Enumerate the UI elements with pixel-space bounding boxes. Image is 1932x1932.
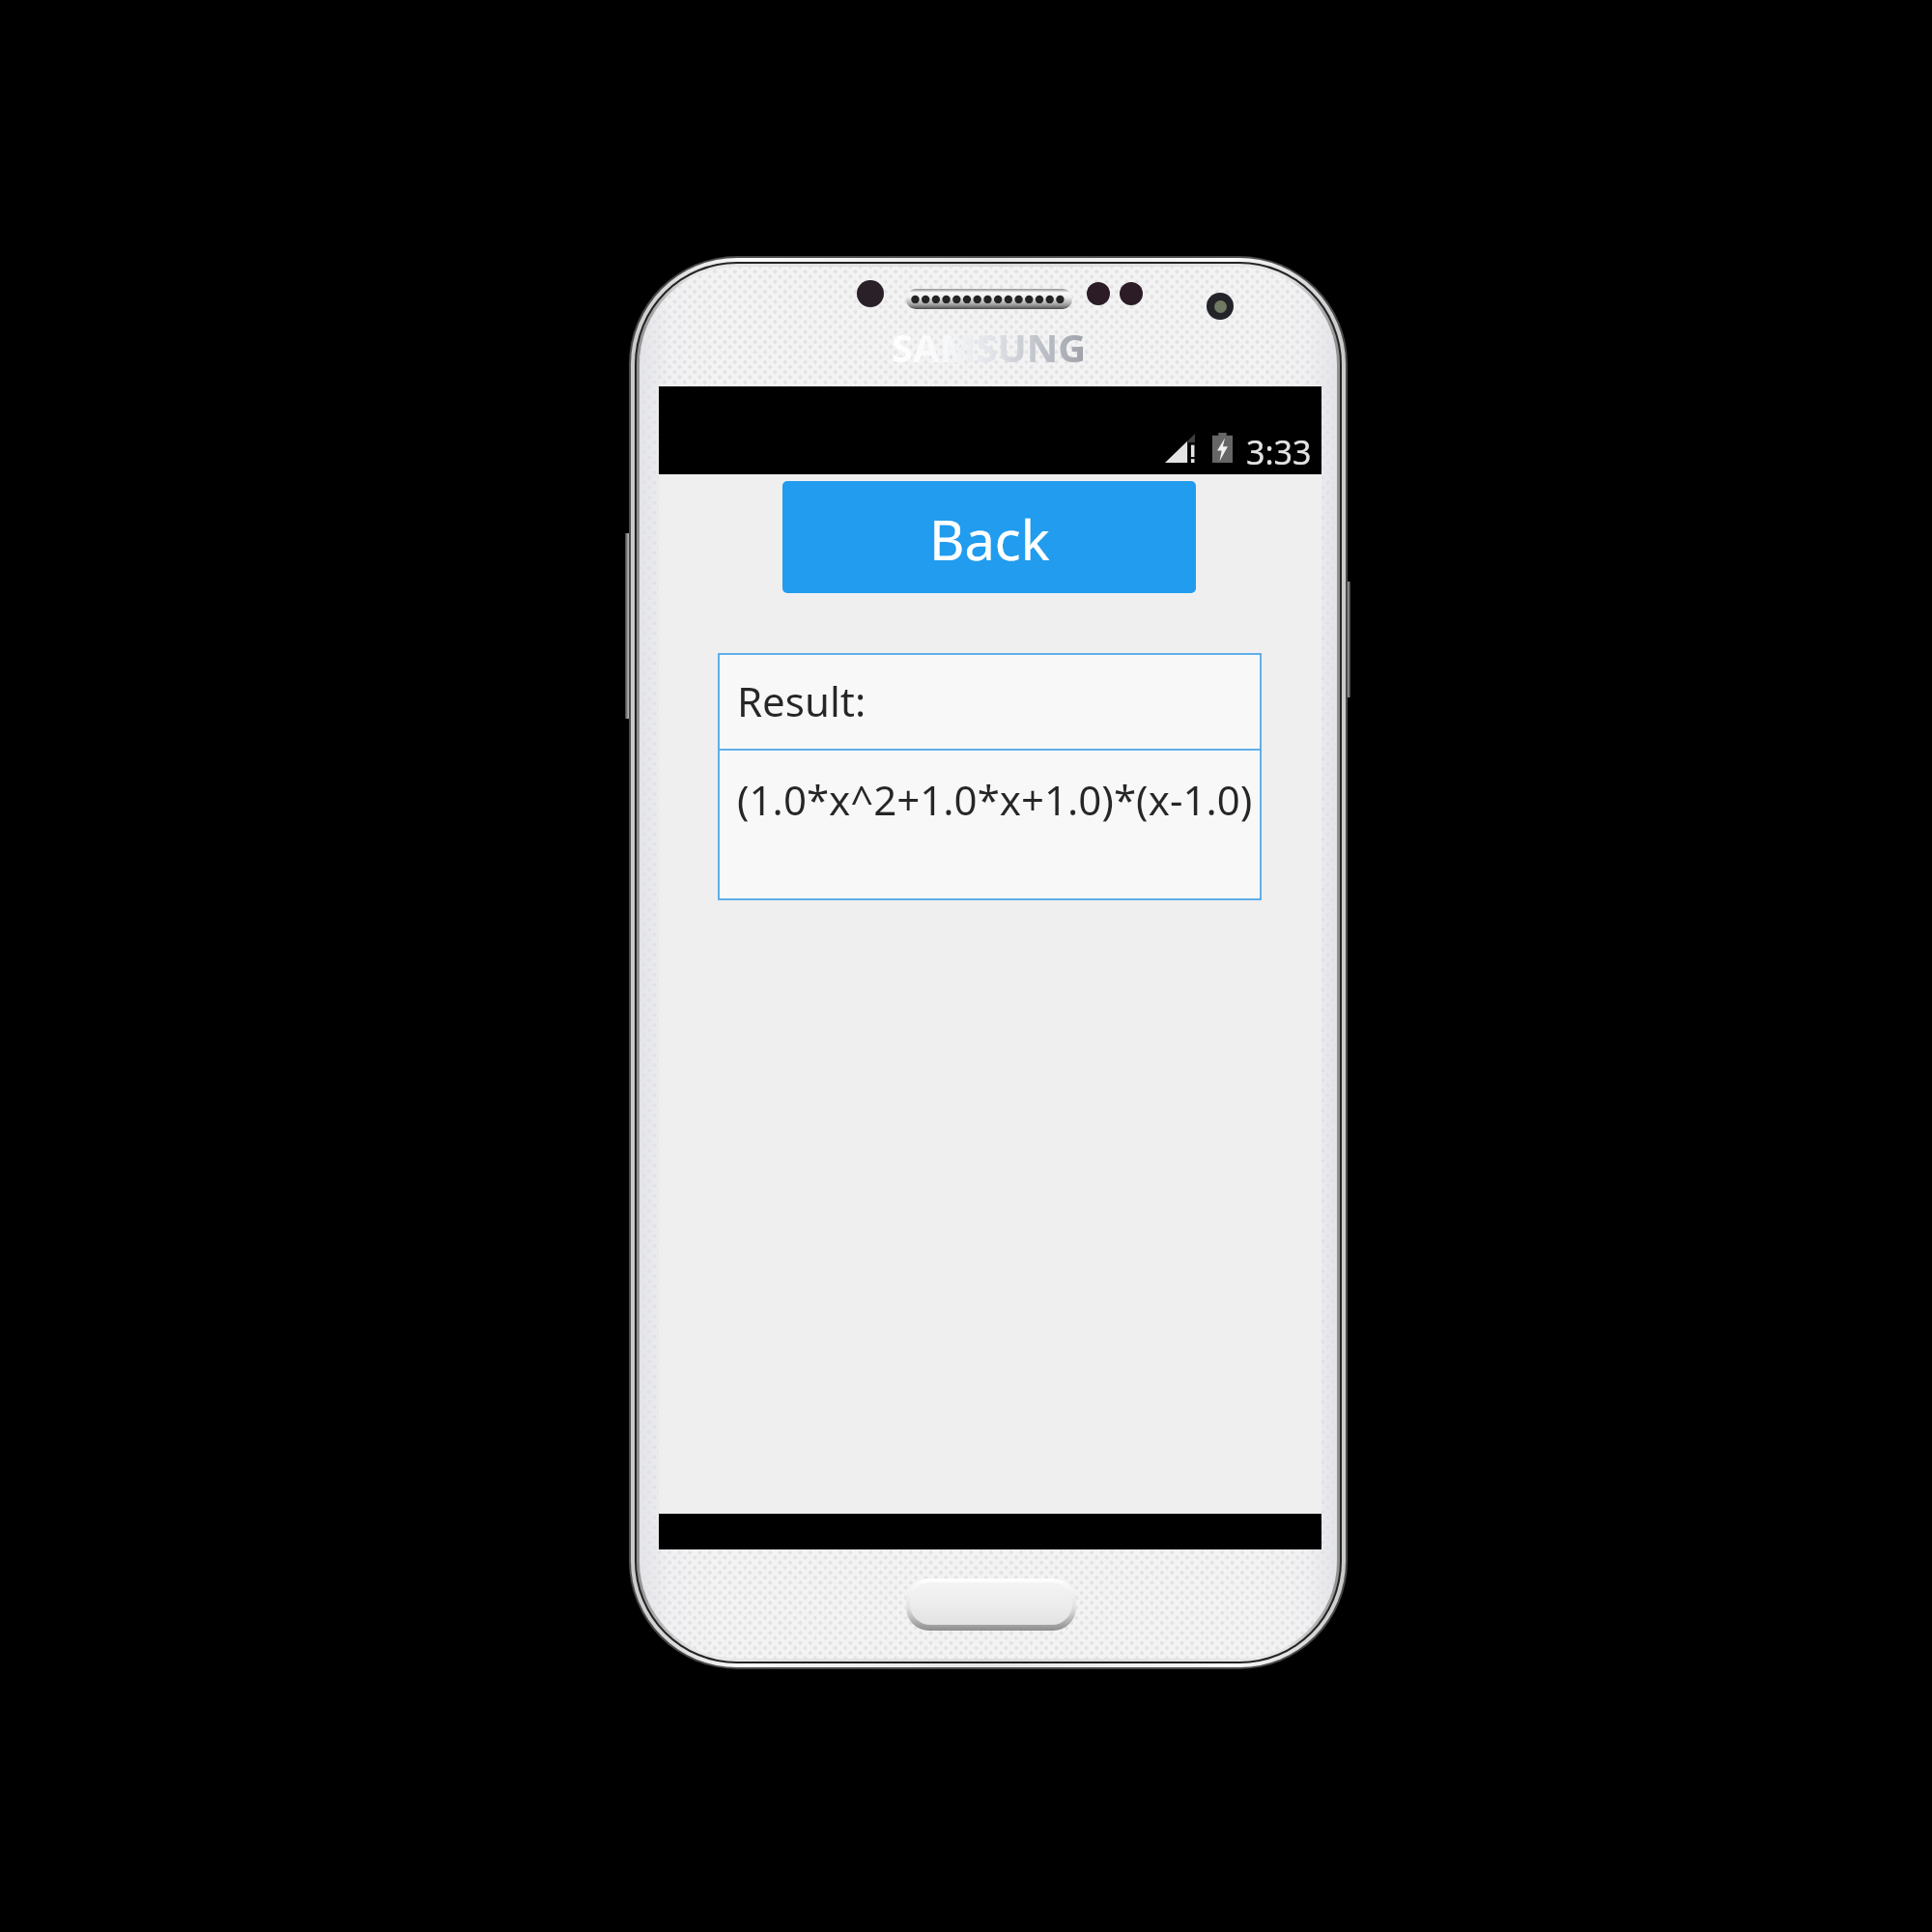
staticText: Result:: [737, 673, 867, 728]
staticText: (1.0*x^2+1.0*x+1.0)*(x-1.0): [737, 772, 1253, 827]
button[interactable]: Power: [1346, 582, 1350, 697]
staticText: Back: [929, 502, 1050, 576]
staticText: SAMSUNG: [892, 321, 1087, 373]
button[interactable]: Volume: [625, 533, 630, 719]
staticText: 3:33: [1246, 430, 1312, 474]
button[interactable]: Back: [782, 481, 1196, 593]
button[interactable]: Home: [906, 1578, 1076, 1631]
